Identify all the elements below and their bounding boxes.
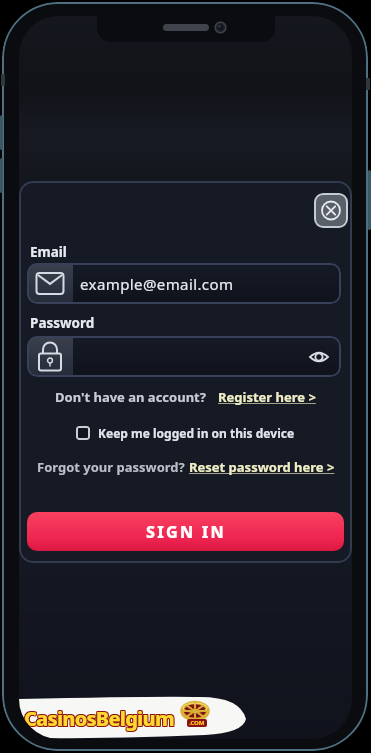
staticText: .COM [189, 719, 205, 727]
staticText: CasinosBelgium [25, 705, 175, 732]
button[interactable]: SIGN IN [27, 512, 344, 551]
staticText: CasinosBelgium [24, 706, 174, 733]
staticText: CasinosBelgium [23, 706, 173, 733]
button[interactable] [314, 193, 348, 228]
staticText: CasinosBelgium [25, 704, 175, 731]
staticText: Forgot your password? [37, 458, 189, 476]
staticText: CasinosBelgium [24, 704, 174, 731]
staticText: SIGN IN [146, 521, 226, 543]
button[interactable] [27, 336, 341, 377]
staticText: Password [30, 314, 95, 332]
staticText: Don't have an account? [55, 388, 206, 406]
staticText: Register here > [218, 388, 316, 406]
button[interactable]: Keep me logged in on this device [19, 424, 352, 442]
staticText: CasinosBelgium [25, 706, 175, 733]
button[interactable]: example@email.com [27, 263, 341, 304]
staticText: Reset password here > [189, 458, 335, 476]
staticText: Keep me logged in on this device [98, 425, 295, 441]
staticText: CasinosBelgium [24, 705, 174, 732]
button[interactable]: Forgot your password? [19, 457, 352, 477]
staticText: CasinosBelgium [23, 704, 173, 731]
staticText: CasinosBelgium [23, 705, 173, 732]
staticText: example@email.com [80, 274, 234, 294]
button[interactable]: CasinosBelgium [19, 697, 251, 739]
staticText: Email [30, 243, 67, 261]
button[interactable] [309, 350, 329, 364]
button[interactable]: Don't have an account? [19, 387, 352, 407]
